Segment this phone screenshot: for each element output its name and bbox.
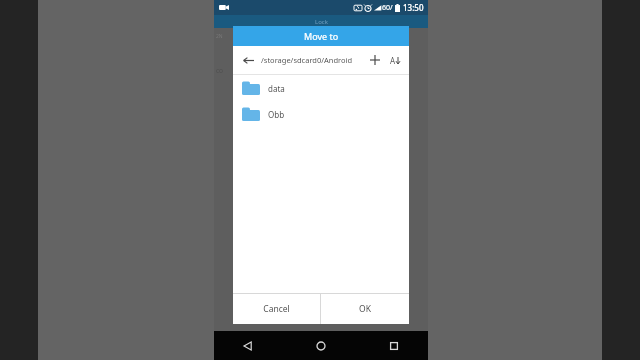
- staticText: 13:50: [403, 2, 424, 13]
- button[interactable]: New folder: [367, 52, 383, 68]
- button[interactable]: OK: [321, 294, 409, 324]
- button[interactable]: Back: [239, 51, 257, 69]
- button[interactable]: Back: [236, 334, 260, 358]
- staticText: Move to: [304, 30, 339, 42]
- button[interactable]: data: [233, 75, 409, 101]
- button[interactable]: Recents: [382, 334, 406, 358]
- button[interactable]: Cancel: [233, 294, 320, 324]
- staticText: OK: [359, 303, 371, 315]
- staticText: A: [390, 55, 396, 66]
- staticText: 60/: [382, 3, 393, 13]
- button[interactable]: Home: [309, 334, 333, 358]
- staticText: CO: [216, 68, 223, 75]
- staticText: Obb: [268, 109, 285, 120]
- button[interactable]: Sort: [387, 52, 403, 68]
- button[interactable]: Obb: [233, 101, 409, 127]
- staticText: 2N: [216, 33, 223, 40]
- staticText: /storage/sdcard0/Android: [261, 55, 367, 65]
- staticText: Cancel: [263, 303, 290, 315]
- staticText: data: [268, 83, 285, 94]
- staticText: Lock: [315, 18, 328, 26]
